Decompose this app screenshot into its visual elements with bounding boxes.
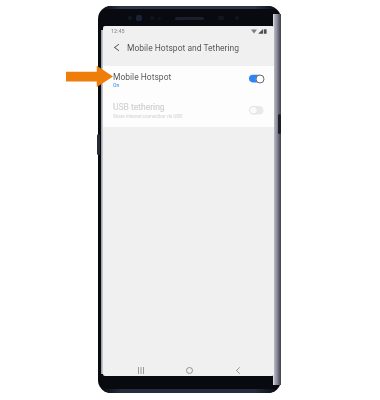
button[interactable]: Navigate up (103, 38, 274, 66)
button[interactable]: Recent apps (129, 358, 153, 376)
staticText: Mobile Hotspot and Tethering (127, 43, 239, 53)
button[interactable]: Navigate up (109, 40, 123, 54)
staticText: Share internet connection via USB (113, 114, 183, 119)
staticText: On (113, 82, 120, 88)
staticText: 12:45 (111, 28, 125, 34)
button[interactable]: USB tethering off (246, 100, 270, 118)
button[interactable]: USB tethering (103, 97, 274, 127)
staticText: USB tethering (113, 102, 165, 112)
button[interactable]: Mobile Hotspot (103, 66, 274, 97)
button[interactable]: Back (225, 358, 250, 376)
staticText: Mobile Hotspot (113, 72, 172, 82)
button[interactable]: Home (177, 358, 201, 376)
button[interactable]: Mobile Hotspot on (246, 70, 270, 88)
other: Pointer arrow (66, 65, 113, 88)
